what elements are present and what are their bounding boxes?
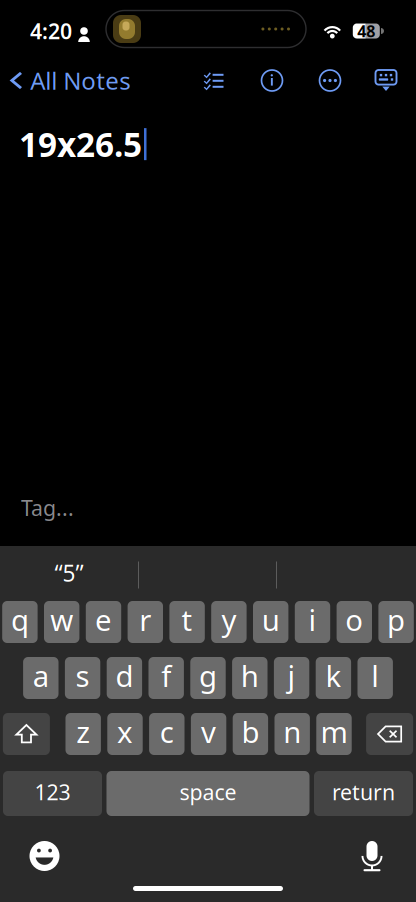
staticText: “5” bbox=[54, 558, 83, 588]
staticText: i bbox=[308, 600, 316, 639]
button[interactable]: c bbox=[149, 713, 184, 755]
staticText: m bbox=[320, 712, 347, 751]
staticText: space bbox=[179, 778, 236, 806]
staticText: n bbox=[283, 712, 301, 751]
button[interactable]: t bbox=[169, 601, 205, 643]
staticText: r bbox=[139, 600, 151, 639]
staticText: w bbox=[50, 600, 73, 639]
button[interactable]: o bbox=[337, 601, 372, 643]
staticText: j bbox=[288, 656, 296, 695]
staticText: y bbox=[221, 600, 236, 639]
button[interactable]: g bbox=[190, 657, 226, 699]
staticText: z bbox=[76, 712, 90, 751]
staticText: f bbox=[161, 656, 171, 695]
button[interactable]: v bbox=[191, 713, 226, 755]
button[interactable]: Note info bbox=[250, 60, 294, 100]
button[interactable]: “5” bbox=[0, 553, 138, 597]
button[interactable]: x bbox=[107, 713, 143, 755]
staticText: l bbox=[371, 656, 379, 695]
button[interactable]: b bbox=[233, 713, 268, 755]
button[interactable]: Shift bbox=[3, 713, 50, 755]
button[interactable]: Delete bbox=[366, 713, 413, 755]
button[interactable]: Hide keyboard bbox=[364, 60, 408, 100]
button[interactable]: a bbox=[23, 657, 58, 699]
button[interactable]: Emoji keyboard bbox=[22, 836, 66, 876]
staticText: All Notes bbox=[30, 65, 130, 96]
button[interactable]: return bbox=[314, 771, 413, 816]
staticText: k bbox=[325, 656, 341, 695]
button[interactable]: More options bbox=[308, 60, 352, 100]
staticText: x bbox=[117, 712, 133, 751]
button[interactable]: w bbox=[44, 601, 79, 643]
button[interactable]: l bbox=[357, 657, 393, 699]
button[interactable]: y bbox=[211, 601, 247, 643]
button[interactable]: Checklist bbox=[192, 60, 236, 100]
button[interactable]: h bbox=[232, 657, 267, 699]
staticText: 48 bbox=[357, 20, 375, 42]
staticText: g bbox=[199, 656, 217, 695]
button[interactable]: i bbox=[295, 601, 330, 643]
staticText: d bbox=[115, 656, 133, 695]
button[interactable]: j bbox=[274, 657, 309, 699]
staticText: t bbox=[182, 600, 193, 639]
staticText: s bbox=[76, 656, 90, 695]
staticText: 19x26.5 bbox=[19, 122, 142, 166]
button[interactable]: p bbox=[378, 601, 414, 643]
staticText: p bbox=[387, 600, 405, 639]
staticText: u bbox=[262, 600, 280, 639]
staticText: e bbox=[95, 600, 112, 639]
button[interactable]: All Notes bbox=[0, 57, 130, 100]
staticText: Tag... bbox=[21, 494, 74, 522]
button[interactable]: Dictation bbox=[350, 836, 394, 876]
button[interactable]: u bbox=[253, 601, 288, 643]
button[interactable]: 123 bbox=[3, 771, 102, 816]
button[interactable]: k bbox=[316, 657, 351, 699]
button[interactable]: r bbox=[128, 601, 163, 643]
staticText: q bbox=[11, 600, 29, 639]
staticText: v bbox=[201, 712, 216, 751]
button[interactable]: s bbox=[65, 657, 100, 699]
button[interactable]: m bbox=[316, 713, 352, 755]
button[interactable]: z bbox=[65, 713, 101, 755]
button[interactable]: space bbox=[106, 771, 309, 816]
button[interactable]: q bbox=[2, 601, 38, 643]
staticText: b bbox=[241, 712, 259, 751]
button[interactable]: f bbox=[148, 657, 184, 699]
staticText: h bbox=[241, 656, 259, 695]
staticText: 4:20 bbox=[30, 17, 72, 45]
button[interactable]: d bbox=[107, 657, 142, 699]
staticText: a bbox=[33, 656, 49, 695]
staticText: c bbox=[160, 712, 174, 751]
staticText: 123 bbox=[34, 778, 70, 806]
button[interactable]: e bbox=[86, 601, 121, 643]
button[interactable]: n bbox=[274, 713, 310, 755]
staticText: return bbox=[332, 778, 395, 806]
staticText: o bbox=[345, 600, 363, 639]
